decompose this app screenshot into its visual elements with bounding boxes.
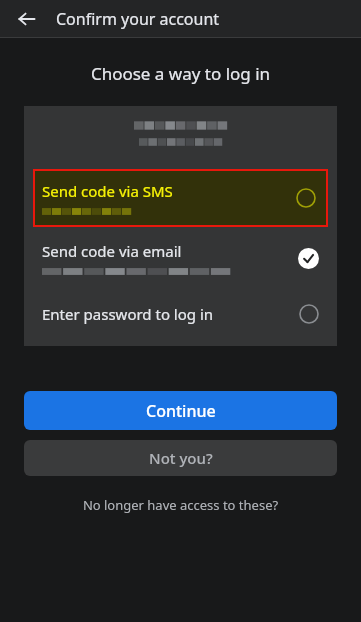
button[interactable]: Continue xyxy=(24,391,337,430)
button[interactable]: No longer have access to these? xyxy=(0,496,361,514)
button[interactable]: Enter password to log in xyxy=(24,290,337,338)
button[interactable]: Send code via email xyxy=(24,227,337,290)
button[interactable]: Send code via SMS xyxy=(33,169,328,227)
staticText: Send code via email xyxy=(42,241,182,261)
staticText: Continue xyxy=(146,400,216,422)
staticText: Not you? xyxy=(149,448,213,468)
button[interactable]: Back xyxy=(10,2,44,36)
staticText: Choose a way to log in xyxy=(0,62,361,85)
staticText: Confirm your account xyxy=(56,8,220,30)
staticText: Enter password to log in xyxy=(42,304,299,324)
staticText: Send code via SMS xyxy=(42,181,173,201)
button[interactable]: Not you? xyxy=(24,440,337,476)
